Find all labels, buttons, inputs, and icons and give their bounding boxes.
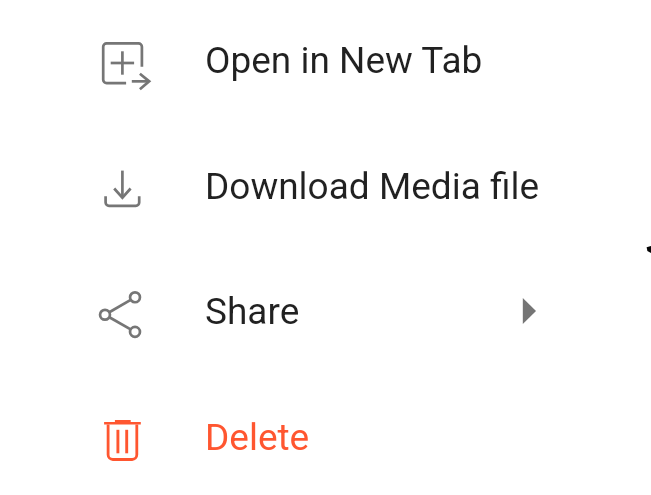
button[interactable]: Delete — [0, 374, 651, 495]
staticText: Delete — [205, 416, 310, 459]
button[interactable]: Download Media file — [0, 123, 651, 249]
staticText: Open in New Tab — [205, 39, 483, 82]
staticText: Download Media file — [205, 165, 540, 208]
button[interactable]: Open in New Tab — [0, 0, 651, 123]
button[interactable]: More share options — [509, 285, 549, 337]
staticText: Share — [205, 290, 300, 333]
button[interactable]: Share — [0, 248, 651, 374]
